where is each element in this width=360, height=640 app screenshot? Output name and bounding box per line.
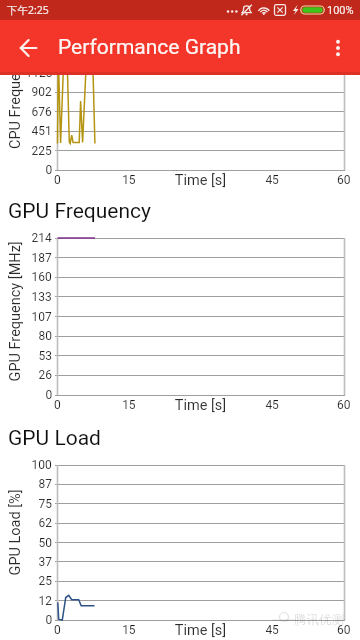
- button[interactable]: Back: [0, 24, 48, 72]
- staticText: Performance Graph: [58, 35, 241, 60]
- staticText: 100%: [327, 4, 354, 17]
- staticText: 下午2:25: [7, 3, 49, 17]
- button[interactable]: More options: [312, 24, 360, 72]
